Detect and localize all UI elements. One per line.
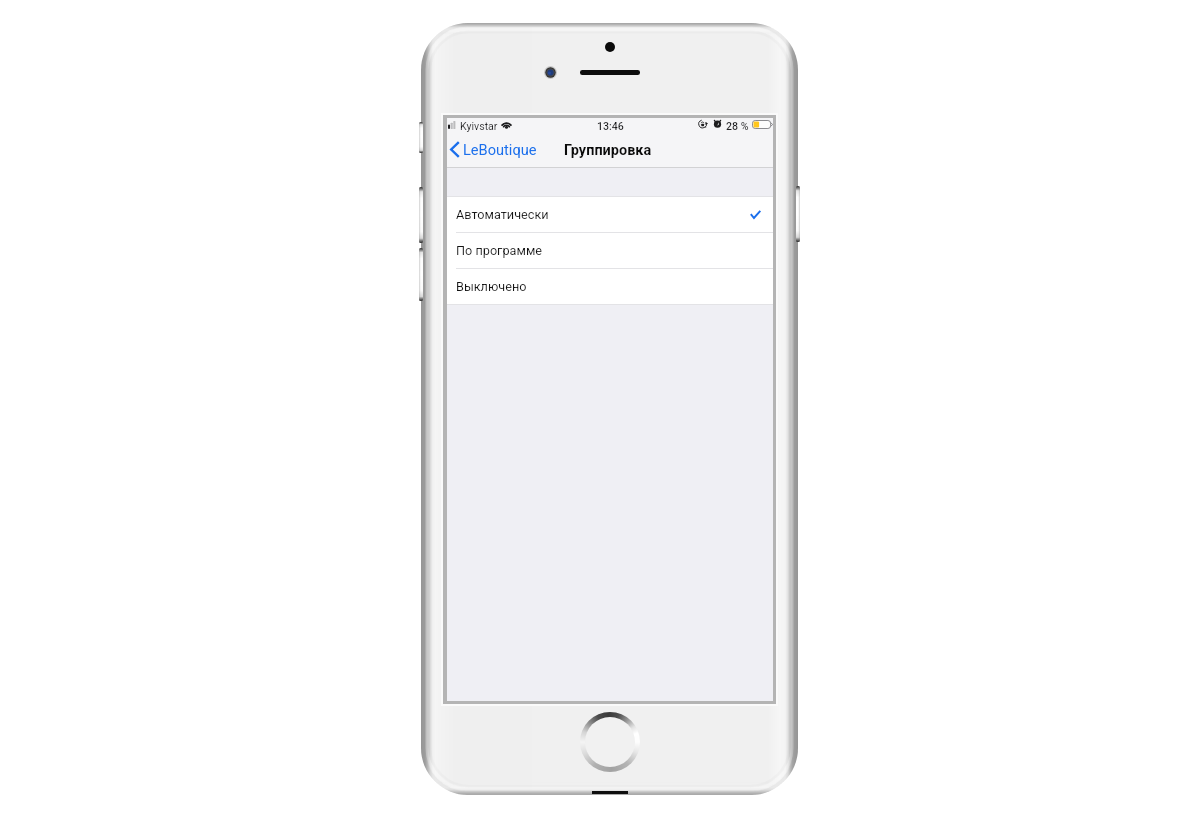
staticText: Автоматически	[456, 207, 549, 222]
staticText: Kyivstar	[460, 120, 498, 132]
button[interactable]: Выключено	[447, 269, 773, 305]
button[interactable]: Автоматически	[447, 197, 773, 233]
staticText: Группировка	[564, 142, 652, 159]
staticText: По программе	[456, 243, 543, 258]
button[interactable]: LeBoutique	[450, 141, 537, 158]
staticText: 13:46	[597, 120, 624, 132]
button[interactable]: По программе	[447, 233, 773, 269]
staticText: Выключено	[456, 279, 527, 294]
button[interactable]: Home	[585, 717, 635, 767]
staticText: 28 %	[726, 120, 749, 132]
staticText: LeBoutique	[463, 141, 537, 158]
